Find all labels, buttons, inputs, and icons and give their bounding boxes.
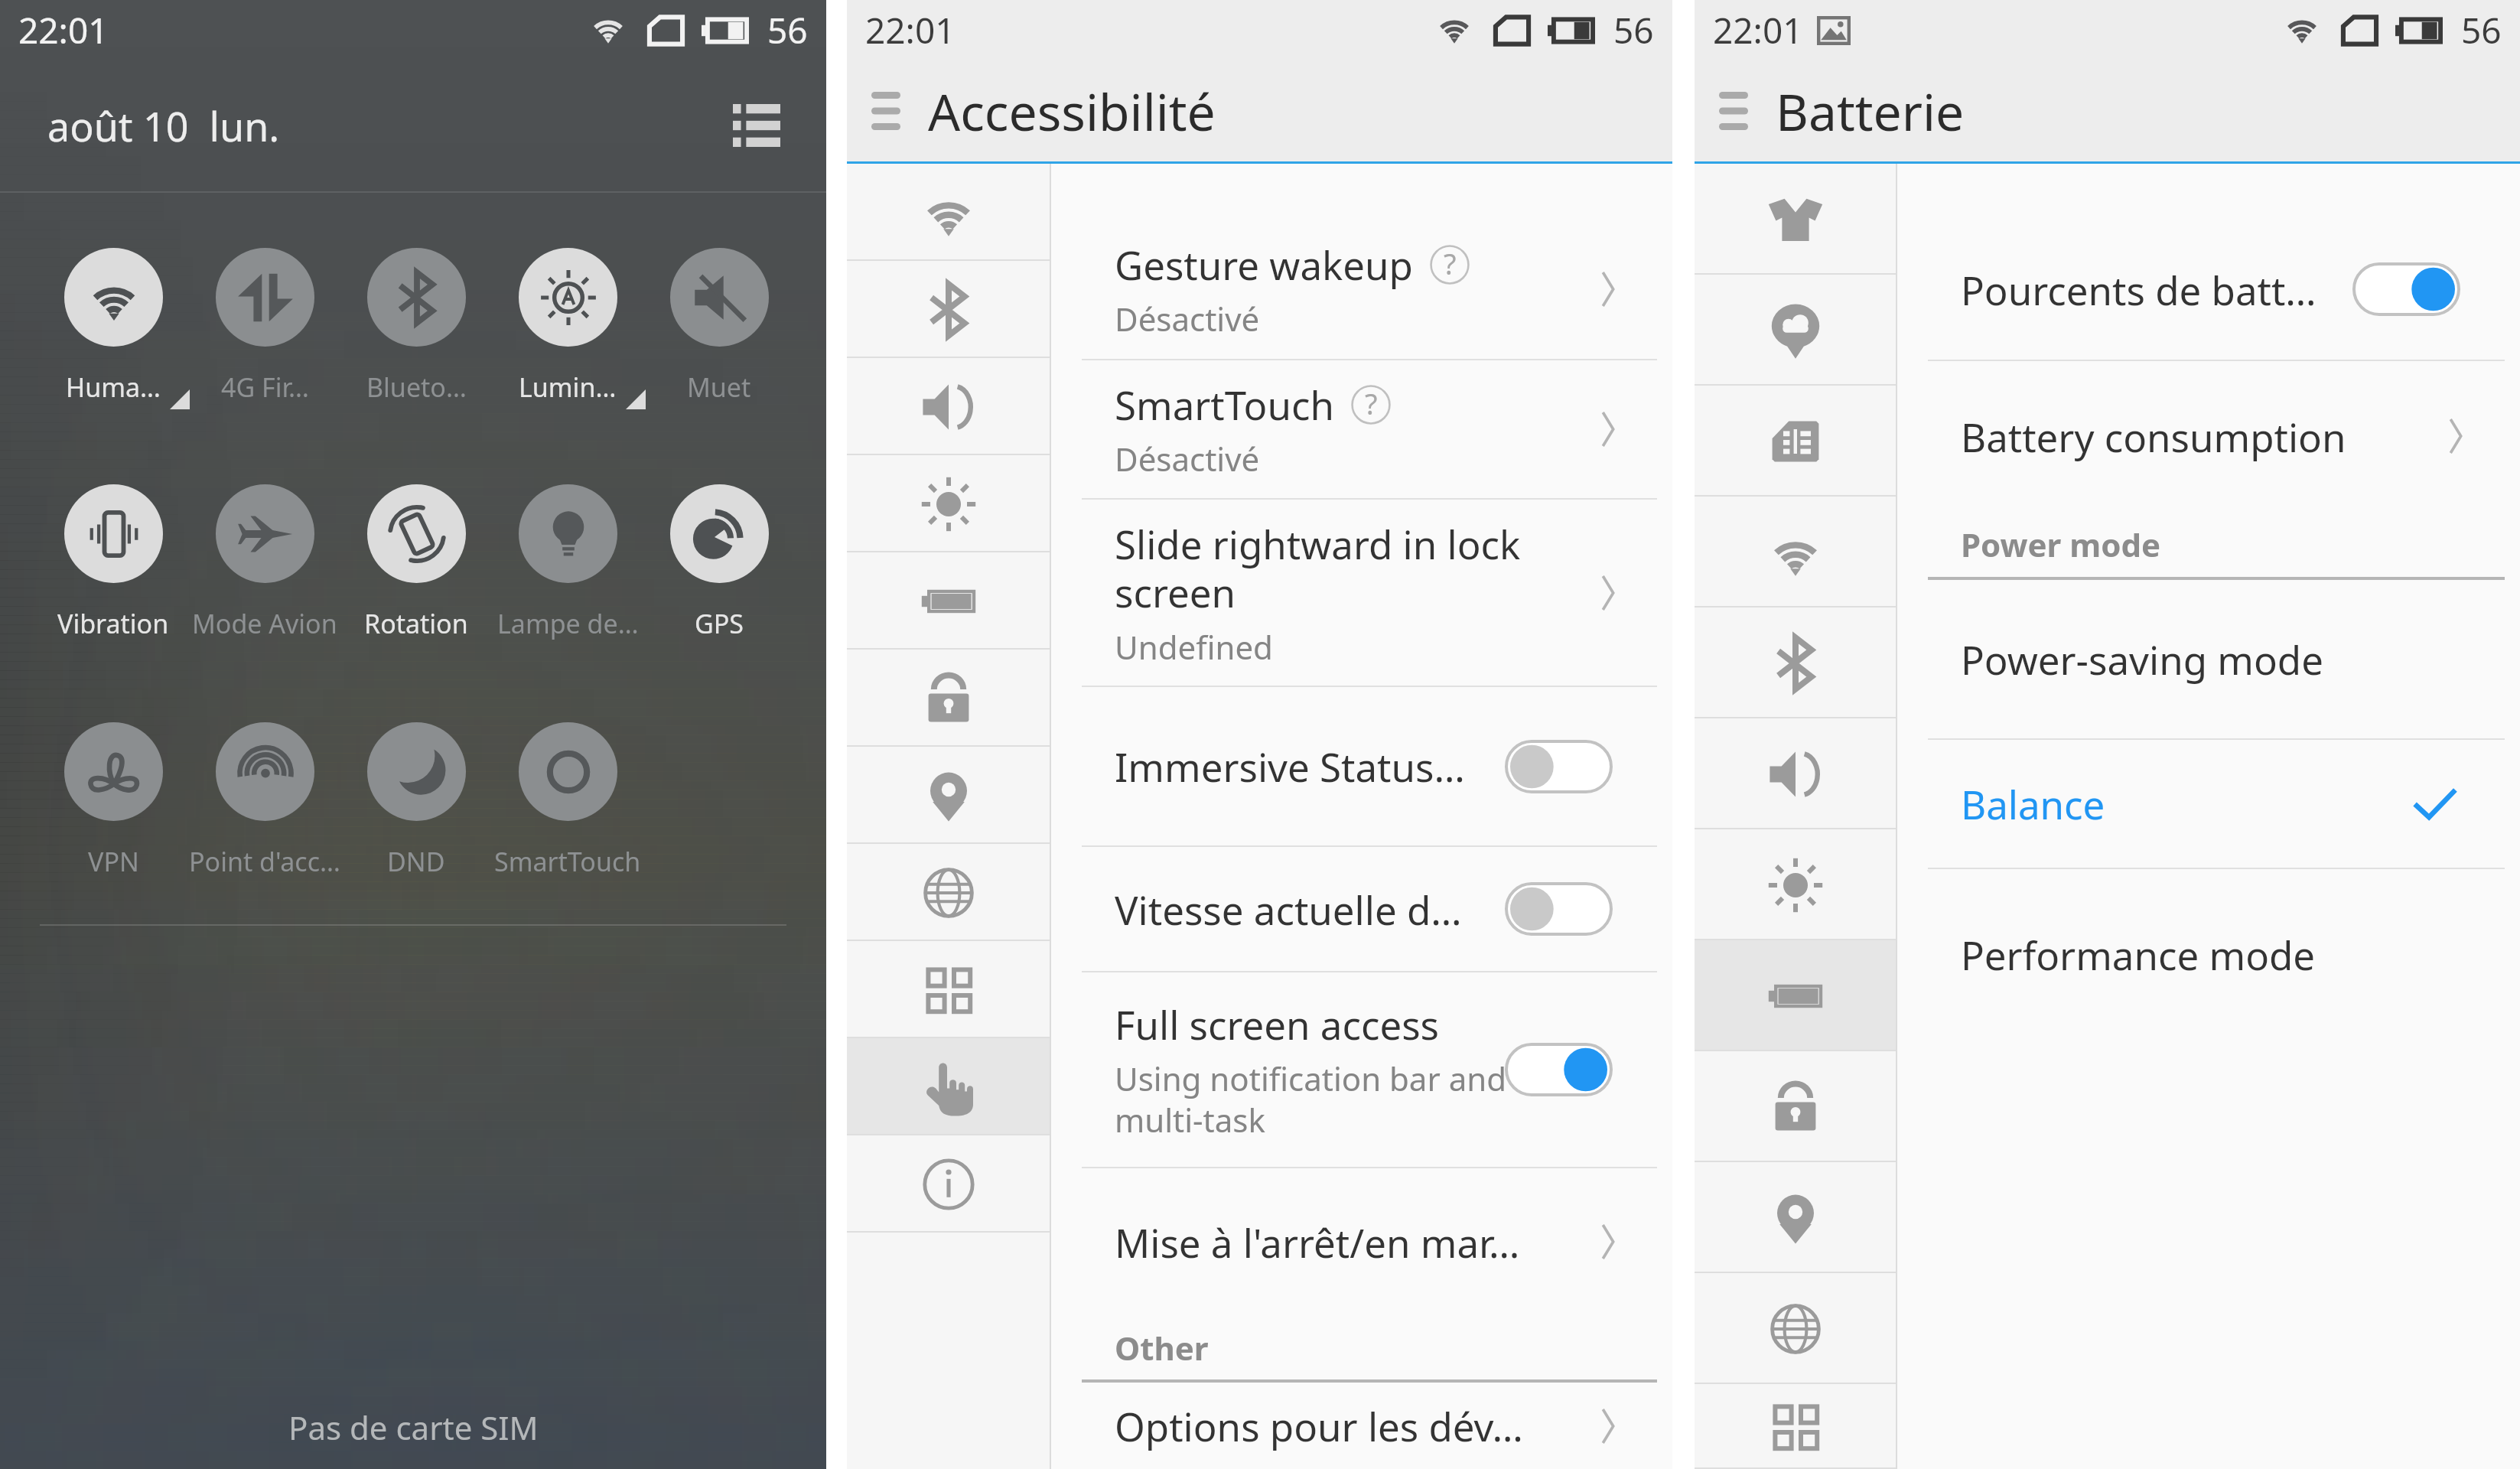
button[interactable]: Bluetooth [847, 261, 1050, 358]
button[interactable]: 4G Fir… [158, 248, 372, 405]
button[interactable]: Battery consumption [1897, 361, 2520, 511]
button[interactable]: Gesture wakeup [1051, 219, 1672, 359]
button[interactable]: Security [847, 650, 1050, 747]
button[interactable]: SmartTouch [461, 722, 675, 879]
staticText: Power mode [1961, 523, 2161, 566]
button[interactable]: Vibration [6, 484, 220, 641]
staticText: Gesture wakeup [1115, 238, 1413, 291]
button[interactable]: Display [1695, 829, 1896, 940]
staticText: Muet [687, 370, 751, 405]
button[interactable]: Immersive Status… [1051, 687, 1672, 845]
staticText: Vitesse actuelle d… [1115, 883, 1462, 936]
button[interactable]: Menu [864, 89, 908, 133]
button[interactable]: Performance mode [1897, 869, 2520, 1039]
staticText: DND [387, 844, 445, 879]
button[interactable]: Point d'acc… [158, 722, 372, 879]
staticText: Balance [1961, 777, 2410, 830]
button[interactable]: About phone [847, 1135, 1050, 1233]
button[interactable]: Language [1695, 1273, 1896, 1384]
staticText: SmartTouch [1115, 378, 1334, 431]
staticText: Using notification bar and multi-task [1115, 1057, 1505, 1142]
button[interactable]: Muet [612, 248, 826, 405]
button[interactable]: Power-saving mode [1897, 580, 2520, 738]
staticText: Huma… [66, 370, 161, 405]
button[interactable]: Applications [1695, 1384, 1896, 1469]
button[interactable]: SIM cards [1695, 386, 1896, 497]
staticText: Other [1115, 1326, 1209, 1370]
staticText: Lampe de… [497, 606, 639, 641]
staticText: 56 [1613, 6, 1654, 54]
button[interactable]: Vitesse actuelle d… [1051, 847, 1672, 971]
staticText: Désactivé [1115, 437, 1260, 480]
staticText: Undefined [1115, 625, 1273, 669]
button[interactable]: Toggle switch [1505, 882, 1613, 936]
button[interactable]: Location [847, 747, 1050, 844]
button[interactable]: Battery [1695, 940, 1896, 1051]
staticText: Rotation [364, 606, 468, 641]
staticText: Battery consumption [1961, 410, 2445, 463]
button[interactable]: Mode Avion [158, 484, 372, 641]
button[interactable]: Wi-Fi [847, 164, 1050, 261]
button[interactable]: Location [1695, 1162, 1896, 1273]
button[interactable]: Sound [1695, 718, 1896, 829]
button[interactable]: Notification list [731, 103, 782, 148]
staticText: Accessibilité [928, 77, 1216, 145]
button[interactable]: Balance [1897, 740, 2520, 868]
staticText: Power-saving mode [1961, 633, 2460, 686]
staticText: Mode Avion [192, 606, 337, 641]
staticText: GPS [695, 606, 744, 641]
staticText: Blueto… [366, 370, 467, 405]
staticText: Lumin… [519, 370, 617, 405]
staticText: 22:01 [1713, 6, 1803, 54]
button[interactable]: Full screen access [1051, 972, 1672, 1167]
staticText: ? [1444, 243, 1457, 283]
button[interactable]: Slide rightward in lock screen [1051, 500, 1672, 686]
staticText: Pourcents de batt… [1961, 263, 2317, 316]
button[interactable]: Bluetooth [1695, 607, 1896, 718]
button[interactable]: Huma… [6, 248, 220, 405]
button[interactable]: DND [309, 722, 523, 879]
staticText: 56 [2461, 6, 2502, 54]
button[interactable]: Battery [847, 552, 1050, 650]
button[interactable]: GPS [612, 484, 826, 641]
button[interactable]: Themes [1695, 164, 1896, 275]
button[interactable]: Rotation [309, 484, 523, 641]
button[interactable]: Menu [1711, 89, 1756, 133]
button[interactable]: VPN [6, 722, 220, 879]
staticText: Désactivé [1115, 297, 1260, 340]
button[interactable]: Wi-Fi [1695, 497, 1896, 607]
button[interactable]: Cloud account [1695, 275, 1896, 386]
button[interactable]: SmartTouch [1051, 360, 1672, 498]
staticText: Vibration [57, 606, 169, 641]
staticText: Options pour les dév… [1115, 1399, 1597, 1452]
staticText: ? [1365, 383, 1378, 423]
staticText: Pas de carte SIM [288, 1405, 539, 1449]
staticText: 4G Fir… [221, 370, 309, 405]
staticText: Mise à l'arrêt/en mar… [1115, 1216, 1597, 1269]
button[interactable]: Lumin… [461, 248, 675, 405]
button[interactable]: Accessibility [847, 1038, 1050, 1135]
staticText: 22:01 [18, 6, 109, 54]
staticText: 56 [767, 6, 808, 54]
button[interactable]: Sound [847, 358, 1050, 455]
button[interactable]: Toggle switch [1505, 740, 1613, 793]
staticText: SmartTouch [494, 844, 641, 879]
button[interactable]: Toggle switch [1505, 1043, 1613, 1096]
staticText: août 10 lun. [47, 99, 280, 153]
button[interactable]: Applications [847, 941, 1050, 1038]
button[interactable]: Security [1695, 1051, 1896, 1162]
button[interactable]: Toggle switch [2352, 262, 2460, 316]
button[interactable]: Display [847, 455, 1050, 552]
staticText: Slide rightward in lock screen [1115, 517, 1521, 619]
button[interactable]: Mise à l'arrêt/en mar… [1051, 1168, 1672, 1315]
button[interactable]: Language [847, 844, 1050, 941]
staticText: Full screen access [1115, 998, 1440, 1050]
staticText: VPN [88, 844, 139, 879]
button[interactable]: Blueto… [309, 248, 523, 405]
button[interactable]: Lampe de… [461, 484, 675, 641]
staticText: Immersive Status… [1115, 740, 1465, 793]
button[interactable]: Pourcents de batt… [1897, 219, 2520, 360]
staticText: Batterie [1776, 77, 1965, 145]
staticText: Point d'acc… [189, 844, 340, 879]
button[interactable]: Options pour les dév… [1051, 1383, 1672, 1469]
